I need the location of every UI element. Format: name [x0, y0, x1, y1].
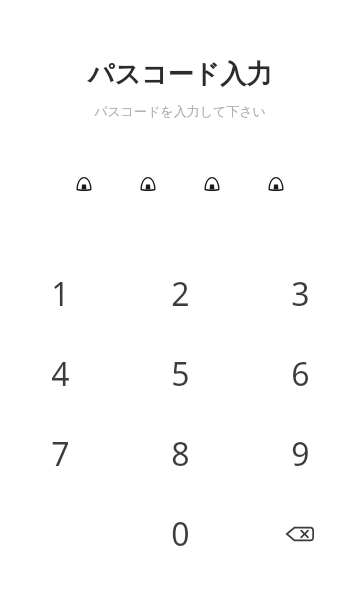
button[interactable]: 2 [120, 254, 240, 334]
staticText: パスコードを入力して下さい [0, 103, 360, 119]
button[interactable]: 0 [120, 494, 240, 574]
staticText: パスコード入力 [0, 58, 360, 91]
staticText: 2 [171, 272, 190, 316]
button[interactable]: 7 [0, 414, 120, 494]
staticText: 0 [171, 512, 190, 556]
staticText: 1 [51, 272, 70, 316]
staticText: 3 [291, 272, 310, 316]
button[interactable]: 9 [240, 414, 360, 494]
staticText: 4 [51, 352, 70, 396]
staticText: 9 [291, 432, 310, 476]
staticText: 7 [51, 432, 70, 476]
staticText: 8 [171, 432, 190, 476]
staticText: 6 [291, 352, 310, 396]
button[interactable]: 1 [0, 254, 120, 334]
button[interactable]: Backspace [240, 494, 360, 574]
button[interactable]: 4 [0, 334, 120, 414]
button[interactable]: 6 [240, 334, 360, 414]
staticText: 5 [171, 352, 190, 396]
button[interactable]: 3 [240, 254, 360, 334]
button[interactable]: 5 [120, 334, 240, 414]
button[interactable]: 8 [120, 414, 240, 494]
